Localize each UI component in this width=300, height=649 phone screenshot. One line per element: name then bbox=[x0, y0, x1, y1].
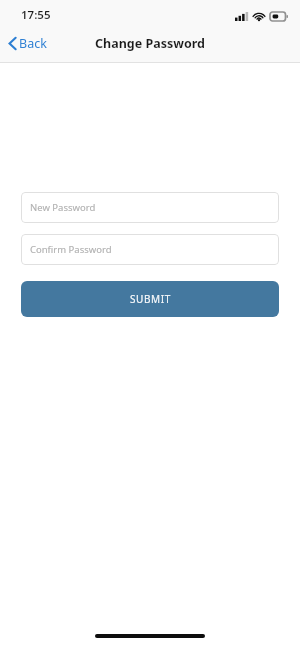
staticText: New Password bbox=[30, 201, 96, 214]
button[interactable]: Back bbox=[0, 31, 57, 56]
button[interactable]: SUBMIT bbox=[21, 281, 279, 317]
staticText: Change Password bbox=[95, 35, 205, 52]
staticText: Back bbox=[19, 35, 47, 52]
button[interactable]: New Password bbox=[21, 192, 279, 223]
staticText: SUBMIT bbox=[130, 292, 171, 306]
button[interactable]: Confirm Password bbox=[21, 234, 279, 265]
staticText: Confirm Password bbox=[30, 243, 112, 256]
staticText: 17:55 bbox=[21, 7, 51, 23]
